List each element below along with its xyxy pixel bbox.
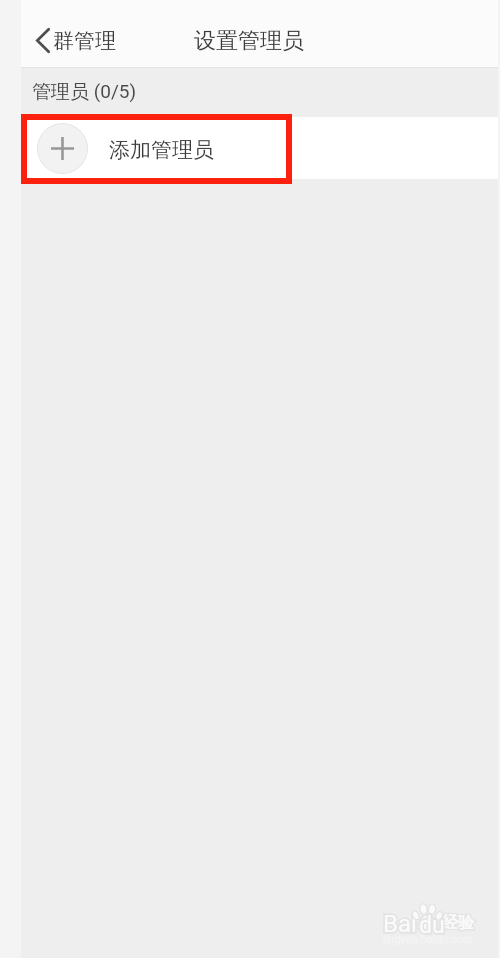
staticText: Bai — [383, 910, 417, 938]
staticText: 设置管理员 — [194, 27, 304, 55]
staticText: 管理员 (0/5) — [32, 80, 137, 104]
staticText: jingyan.baidu.com — [383, 933, 473, 946]
staticText: Bai — [383, 910, 417, 938]
staticText: 经验 — [442, 913, 474, 933]
staticText: 经验 — [442, 913, 474, 933]
staticText: 群管理 — [53, 28, 116, 54]
staticText: du — [419, 912, 445, 939]
staticText: 添加管理员 — [109, 137, 214, 163]
button[interactable]: 添加管理员 — [0, 117, 500, 179]
button[interactable]: 返回 群管理 — [0, 0, 130, 67]
staticText: du — [419, 912, 445, 939]
